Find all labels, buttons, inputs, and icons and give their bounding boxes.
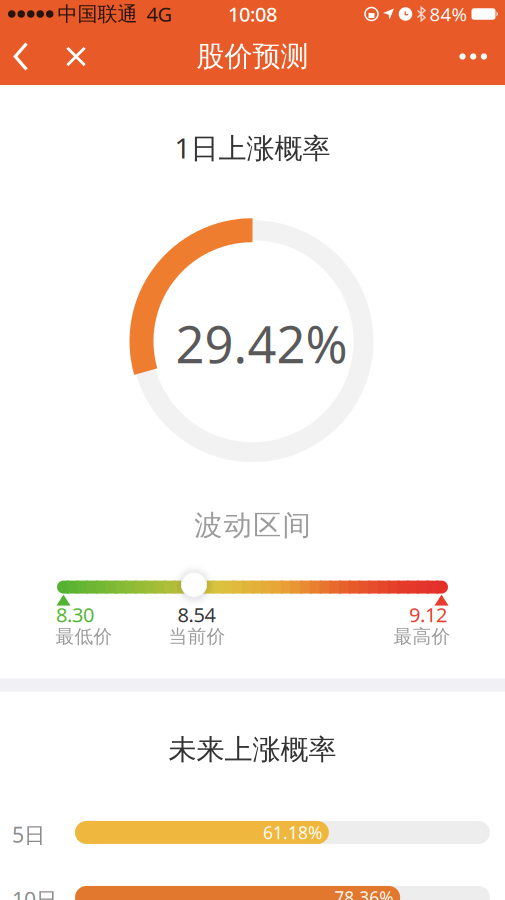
staticText: 84% [429,2,467,26]
staticText: 1日上涨概率 [174,129,330,166]
staticText: 波动区间 [194,508,311,543]
staticText: 当前价 [168,625,225,648]
staticText: 29.42% [175,310,347,377]
staticText: 61.18% [263,821,322,844]
button[interactable]: Close [48,28,103,85]
staticText: 9.12 [409,601,447,628]
staticText: 5日 [12,820,45,849]
staticText: 股价预测 [196,39,308,74]
staticText: 8.30 [56,601,94,628]
staticText: 10:08 [228,1,277,27]
staticText: 未来上涨概率 [168,733,336,767]
staticText: 78.36% [334,886,393,900]
button[interactable]: More [459,28,505,85]
staticText: 8.54 [177,601,215,628]
staticText: 4G [146,1,172,27]
staticText: 中国联通 [57,2,137,26]
button[interactable]: Back [0,28,48,85]
staticText: 最高价 [393,625,450,648]
staticText: 最低价 [55,625,112,648]
staticText: 10日 [12,885,57,900]
